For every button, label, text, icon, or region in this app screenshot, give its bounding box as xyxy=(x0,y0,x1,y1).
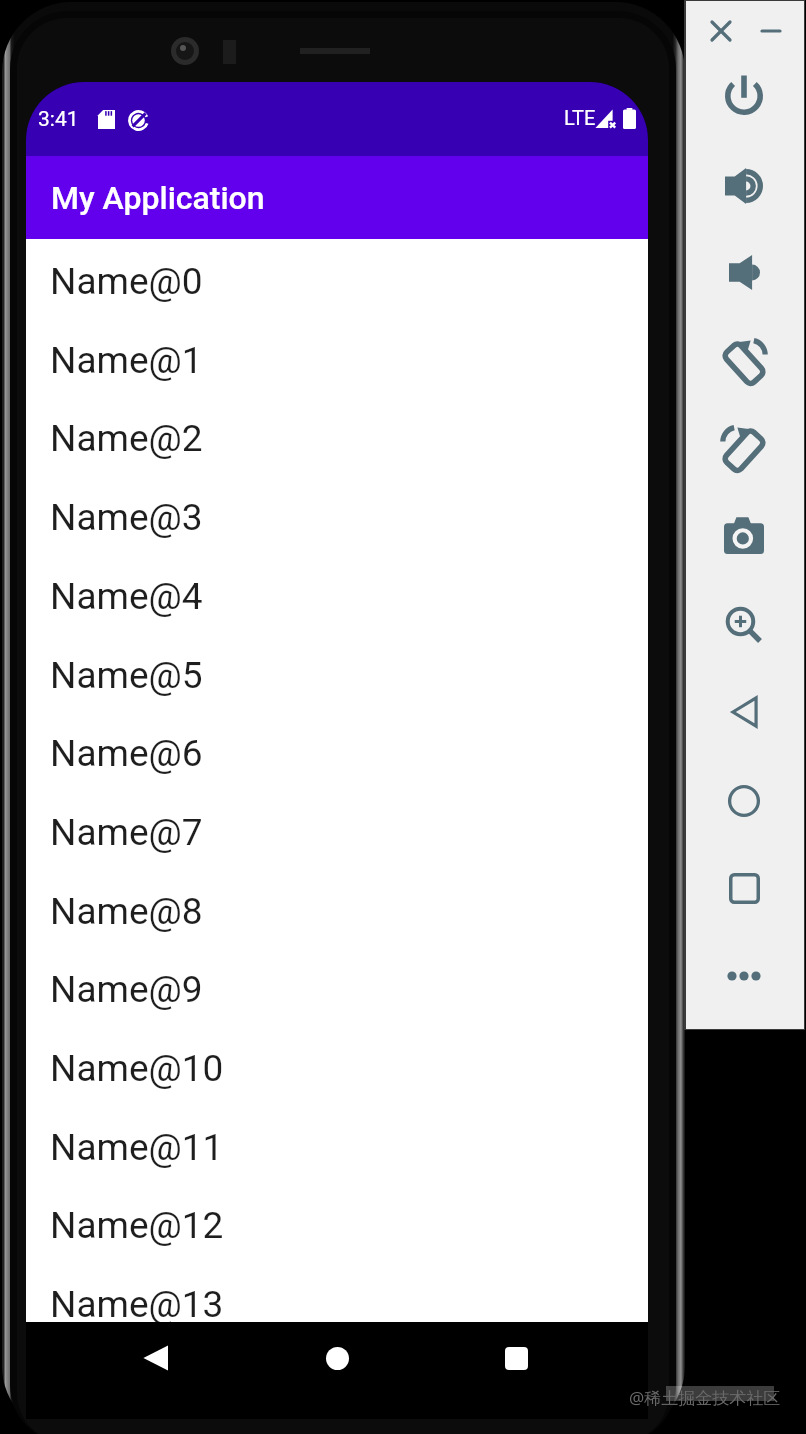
button[interactable]: Minimize xyxy=(753,13,789,49)
staticText: Name@11 xyxy=(50,1126,224,1169)
button[interactable]: Name@2 xyxy=(26,396,648,475)
button[interactable]: Name@8 xyxy=(26,869,648,948)
staticText: Name@13 xyxy=(50,1283,224,1322)
button[interactable]: Volume up xyxy=(714,156,774,216)
staticText: Name@12 xyxy=(50,1204,224,1247)
staticText: Name@8 xyxy=(50,890,203,933)
staticText: Name@0 xyxy=(50,260,203,303)
button[interactable]: Name@13 xyxy=(26,1262,648,1322)
staticText: Name@2 xyxy=(50,417,203,460)
button[interactable]: Recent apps xyxy=(714,858,774,918)
button[interactable]: Name@9 xyxy=(26,947,648,1026)
button[interactable]: Take screenshot xyxy=(714,505,774,565)
button[interactable]: Name@11 xyxy=(26,1105,648,1184)
staticText: Name@6 xyxy=(50,732,203,775)
staticText: @稀土掘金技术社区 xyxy=(629,1386,781,1409)
button[interactable]: Close xyxy=(703,13,739,49)
button[interactable]: Back xyxy=(714,682,774,742)
button[interactable]: Zoom xyxy=(714,595,774,655)
button[interactable]: Name@7 xyxy=(26,790,648,869)
button[interactable]: Name@10 xyxy=(26,1026,648,1105)
button[interactable]: Power xyxy=(714,65,774,125)
staticText: Name@9 xyxy=(50,968,203,1011)
button[interactable]: Name@0 xyxy=(26,239,648,318)
staticText: Name@5 xyxy=(50,654,203,697)
button[interactable]: Back xyxy=(130,1332,182,1384)
button[interactable]: Rotate left xyxy=(714,331,774,391)
button[interactable]: Rotate right xyxy=(714,418,774,478)
staticText: Name@10 xyxy=(50,1047,224,1090)
button[interactable]: Volume down xyxy=(714,242,774,302)
button[interactable]: More xyxy=(714,946,774,1006)
staticText: Name@7 xyxy=(50,811,203,854)
button[interactable]: Name@3 xyxy=(26,475,648,554)
button[interactable]: Name@12 xyxy=(26,1183,648,1262)
button[interactable]: Name@6 xyxy=(26,711,648,790)
button[interactable]: Name@4 xyxy=(26,554,648,633)
button[interactable]: Name@5 xyxy=(26,633,648,712)
button[interactable]: Name@1 xyxy=(26,318,648,397)
staticText: LTE xyxy=(564,106,596,129)
staticText: Name@4 xyxy=(50,575,203,618)
button[interactable]: Recent apps xyxy=(490,1332,542,1384)
staticText: My Application xyxy=(51,179,265,217)
staticText: 3:41 xyxy=(38,107,79,132)
staticText: Name@3 xyxy=(50,496,203,539)
staticText: Name@1 xyxy=(50,339,203,382)
button[interactable]: Home xyxy=(714,771,774,831)
button[interactable]: Home xyxy=(311,1332,363,1384)
